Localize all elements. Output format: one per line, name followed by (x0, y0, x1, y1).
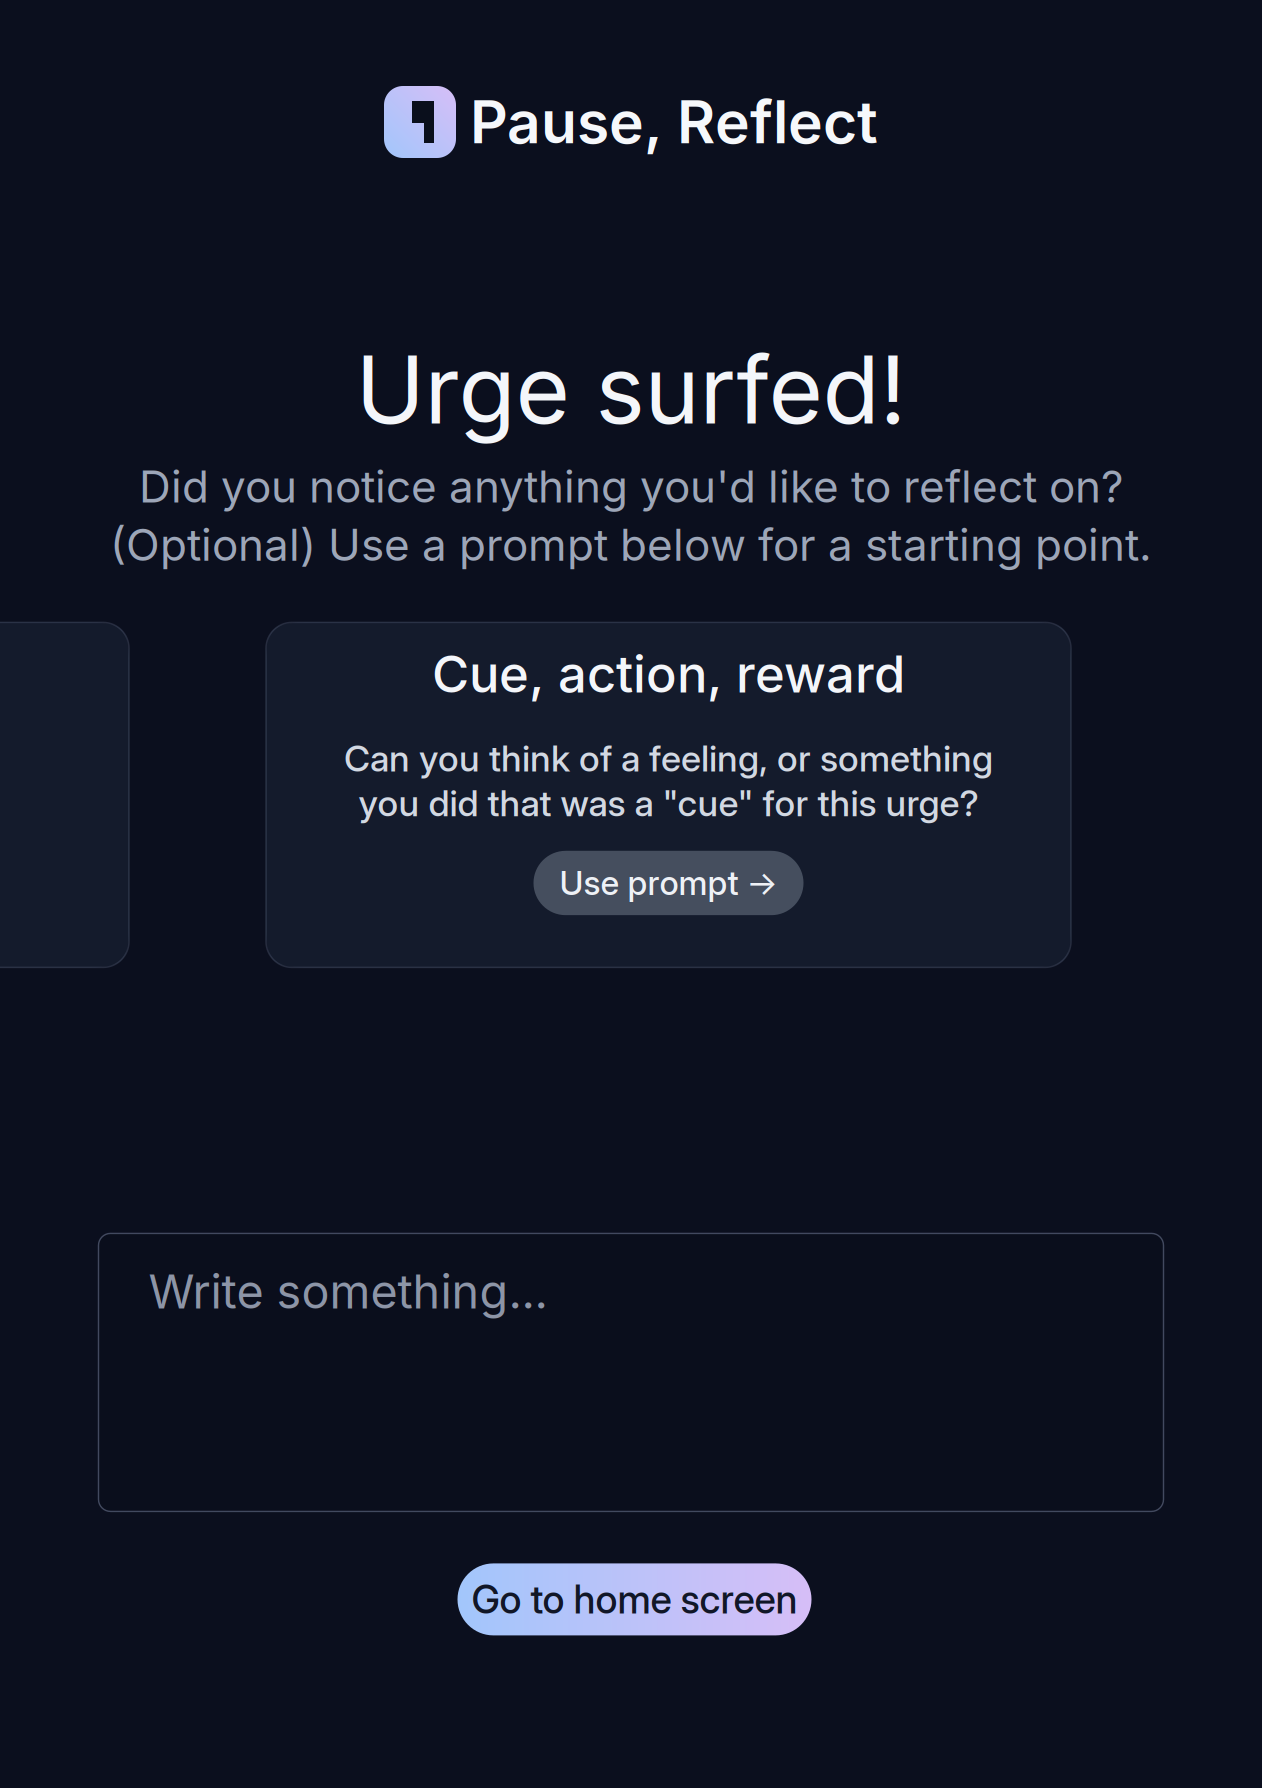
button[interactable]: Go to home screen (457, 1563, 811, 1635)
staticText: Pause, Reflect (470, 86, 878, 157)
staticText: Cue, action, reward (432, 643, 905, 705)
staticText: you did that was a "cue" for this urge? (358, 781, 978, 825)
staticText: Did you notice anything you'd like to re… (139, 460, 1123, 513)
staticText: Urge surfed! (355, 333, 906, 446)
staticText: Can you think of a feeling, or something (344, 737, 993, 780)
staticText: Use prompt (559, 863, 738, 903)
staticText: Write something... (148, 1263, 547, 1320)
button[interactable]: Use prompt (533, 851, 803, 915)
staticText: (Optional) Use a prompt below for a star… (110, 518, 1152, 571)
staticText: → (746, 863, 777, 903)
staticText: Go to home screen (471, 1576, 797, 1623)
